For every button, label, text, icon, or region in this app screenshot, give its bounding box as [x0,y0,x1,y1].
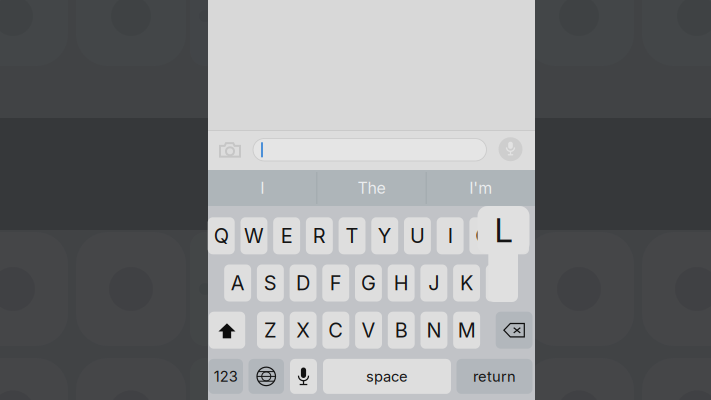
staticText: L [494,210,512,250]
button[interactable]: B [388,312,415,349]
button[interactable]: return [456,359,532,394]
staticText: The [357,178,385,198]
staticText: Z [264,318,277,342]
staticText: K [460,271,473,295]
staticText: V [362,318,376,342]
button[interactable]: Delete [496,312,532,349]
button[interactable]: The [317,170,426,206]
button[interactable]: L [486,264,513,301]
button[interactable]: J [420,264,447,301]
staticText: T [346,224,359,248]
staticText: U [410,224,425,248]
button[interactable]: Q [208,217,235,254]
staticText: H [394,271,409,295]
button[interactable]: X [290,312,317,349]
staticText: space [366,367,408,385]
button[interactable]: G [355,264,382,301]
button[interactable]: M [453,312,480,349]
staticText: A [231,271,245,295]
staticText: I [260,178,264,198]
button[interactable]: V [355,312,382,349]
button[interactable]: H [388,264,415,301]
staticText: I'm [469,178,492,198]
staticText: F [330,271,342,295]
staticText: N [426,318,441,342]
button[interactable]: A [224,264,251,301]
button[interactable]: S [257,264,284,301]
staticText: D [296,271,310,295]
button[interactable]: P [502,217,529,254]
staticText: Q [214,224,229,248]
button[interactable]: T [339,217,365,254]
staticText: I [448,224,453,248]
staticText: G [361,271,376,295]
button[interactable]: Switch keyboard [248,359,284,394]
button[interactable]: Dictate [498,137,522,161]
button[interactable]: Y [371,217,398,254]
button[interactable]: E [273,217,300,254]
staticText: X [296,318,310,342]
button[interactable]: 123 [208,359,243,394]
button[interactable]: D [290,264,316,301]
button[interactable]: I'm [426,170,535,206]
staticText: E [281,224,293,248]
button[interactable]: O [469,217,496,254]
staticText: O [475,224,490,248]
staticText: W [244,224,264,248]
button[interactable]: Take photo [214,137,246,163]
button[interactable]: C [322,312,349,349]
staticText: Y [378,224,392,248]
staticText: M [458,318,476,342]
staticText: J [428,271,439,295]
staticText: R [313,224,326,248]
button[interactable]: F [322,264,349,301]
button[interactable]: K [453,264,480,301]
staticText: return [473,367,516,385]
button[interactable]: I [437,217,464,254]
button[interactable]: space [323,359,451,394]
staticText: B [395,318,408,342]
button[interactable]: N [420,312,447,349]
button[interactable]: Dictation [290,359,317,394]
staticText: P [509,224,522,248]
button[interactable]: R [306,217,333,254]
staticText: S [264,271,277,295]
button[interactable]: Shift [209,312,245,349]
staticText: 123 [214,367,238,385]
button[interactable]: W [240,217,267,254]
button[interactable]: Z [257,312,284,349]
button[interactable]: U [404,217,431,254]
button[interactable]: I [208,170,316,206]
staticText: C [328,318,343,342]
